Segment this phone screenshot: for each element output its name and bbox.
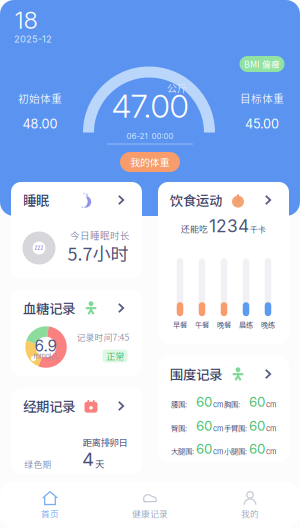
- staticText: 千卡: [250, 223, 266, 235]
- staticText: 47.00: [111, 87, 188, 125]
- button[interactable]: 围度记录: [158, 356, 289, 462]
- staticText: 胸围:: [224, 399, 240, 409]
- staticText: 还能吃: [181, 222, 208, 235]
- staticText: 60: [196, 418, 212, 434]
- staticText: 公斤: [167, 81, 187, 95]
- staticText: cm: [266, 447, 276, 456]
- staticText: 5.7小时: [67, 240, 128, 266]
- staticText: ZZZ: [34, 245, 43, 251]
- staticText: 18: [14, 5, 37, 34]
- staticText: 晚练: [261, 319, 275, 330]
- button[interactable]: 睡眠: [11, 182, 142, 278]
- button[interactable]: 我的体重: [120, 152, 180, 172]
- staticText: cm: [213, 424, 223, 433]
- staticText: 48.00: [22, 116, 57, 132]
- staticText: 饮食运动: [170, 190, 222, 210]
- staticText: 绿色期: [24, 458, 51, 470]
- staticText: 大腿围:: [171, 446, 194, 456]
- staticText: 距离排卵日: [82, 435, 127, 449]
- button[interactable]: 经期记录: [11, 388, 142, 474]
- staticText: 晨练: [239, 319, 253, 330]
- button[interactable]: 首页: [0, 482, 100, 528]
- staticText: cm: [266, 400, 276, 409]
- staticText: BMI 偏瘦: [244, 58, 280, 70]
- button[interactable]: 我的: [200, 482, 300, 528]
- staticText: 目标体重: [240, 90, 284, 106]
- staticText: 经期记录: [23, 396, 75, 416]
- staticText: cm: [266, 424, 276, 433]
- staticText: cm: [213, 447, 223, 456]
- staticText: 臀围:: [171, 423, 187, 433]
- staticText: 正常: [106, 349, 124, 363]
- staticText: 60: [196, 441, 212, 457]
- button[interactable]: 饮食运动: [158, 182, 289, 344]
- staticText: 晚餐: [217, 319, 231, 330]
- staticText: 手臂围:: [224, 423, 247, 433]
- staticText: 小腿围:: [224, 446, 247, 456]
- staticText: 记录时间7:45: [76, 331, 129, 343]
- staticText: cm: [213, 400, 223, 409]
- staticText: 60: [249, 418, 265, 434]
- staticText: 健康记录: [132, 507, 168, 520]
- staticText: 今日睡眠时长: [70, 228, 130, 242]
- staticText: 45.00: [245, 116, 279, 132]
- staticText: 06-21 00:00: [126, 131, 173, 141]
- staticText: 血糖记录: [23, 298, 75, 318]
- staticText: 60: [196, 394, 212, 410]
- staticText: 天: [95, 457, 104, 470]
- staticText: 睡眠: [23, 190, 49, 210]
- staticText: 腰围:: [171, 399, 187, 409]
- staticText: 我的体重: [130, 155, 170, 169]
- button[interactable]: BMI 偏瘦: [239, 56, 284, 72]
- staticText: 初始体重: [18, 90, 62, 106]
- staticText: 4: [82, 448, 94, 470]
- staticText: 60: [249, 441, 265, 457]
- staticText: 2025-12: [14, 33, 52, 45]
- staticText: 6.9: [34, 337, 57, 355]
- staticText: 60: [249, 394, 265, 410]
- staticText: 午餐: [195, 319, 209, 330]
- staticText: mmol/L: [33, 352, 58, 360]
- staticText: 早餐: [173, 319, 187, 330]
- staticText: 首页: [41, 507, 59, 520]
- button[interactable]: 健康记录: [100, 482, 200, 528]
- staticText: 围度记录: [170, 364, 222, 384]
- staticText: 我的: [241, 507, 259, 520]
- button[interactable]: 血糖记录: [11, 290, 142, 376]
- staticText: 1234: [209, 215, 249, 236]
